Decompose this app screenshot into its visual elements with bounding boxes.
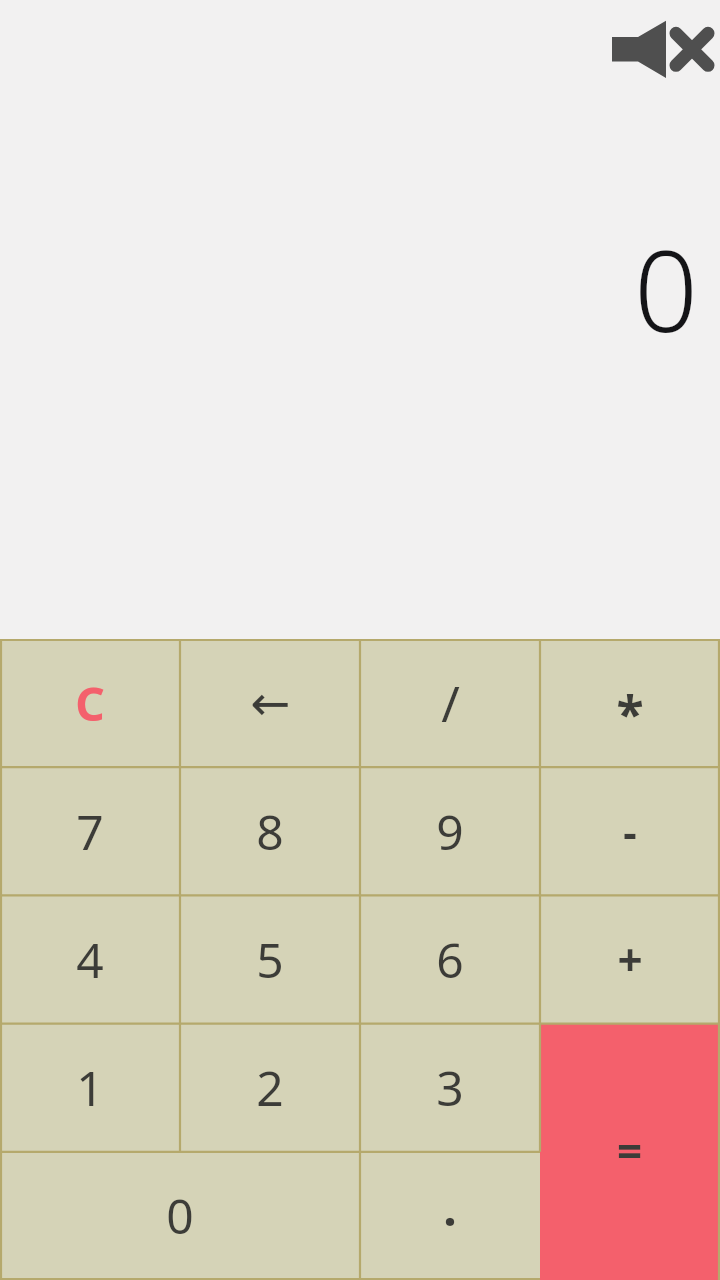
staticText: ← — [250, 675, 291, 731]
button[interactable]: 2 — [180, 1023, 360, 1151]
button[interactable]: 7 — [0, 767, 180, 895]
staticText: . — [443, 1175, 457, 1240]
button[interactable]: / — [360, 639, 540, 767]
staticText: 0 — [634, 212, 698, 365]
staticText: 5 — [256, 927, 284, 992]
button[interactable]: 6 — [360, 895, 540, 1023]
button[interactable]: 4 — [0, 895, 180, 1023]
button[interactable]: C — [0, 639, 180, 767]
staticText: 1 — [76, 1055, 104, 1120]
button[interactable]: ← — [180, 639, 360, 767]
button[interactable]: = — [540, 1023, 720, 1280]
staticText: 6 — [436, 927, 464, 992]
button[interactable]: 8 — [180, 767, 360, 895]
button[interactable]: * — [540, 639, 720, 767]
button[interactable]: 3 — [360, 1023, 540, 1151]
button[interactable]: 9 — [360, 767, 540, 895]
staticText: 2 — [256, 1055, 284, 1120]
staticText: C — [75, 672, 105, 735]
button[interactable]: 5 — [180, 895, 360, 1023]
staticText: - — [623, 803, 637, 860]
button[interactable]: + — [540, 895, 720, 1023]
staticText: 9 — [436, 799, 464, 864]
staticText: 7 — [76, 799, 104, 864]
staticText: * — [616, 679, 644, 747]
staticText: / — [441, 669, 460, 737]
staticText: 0 — [166, 1183, 194, 1248]
button[interactable]: 1 — [0, 1023, 180, 1151]
staticText: = — [617, 1120, 643, 1180]
staticText: 4 — [76, 927, 104, 992]
button[interactable]: Mute sound — [598, 14, 706, 82]
button[interactable]: . — [360, 1151, 540, 1279]
staticText: 3 — [436, 1055, 464, 1120]
staticText: + — [617, 929, 643, 989]
staticText: 8 — [256, 799, 284, 864]
button[interactable]: - — [540, 767, 720, 895]
button[interactable]: 0 — [0, 1151, 360, 1279]
